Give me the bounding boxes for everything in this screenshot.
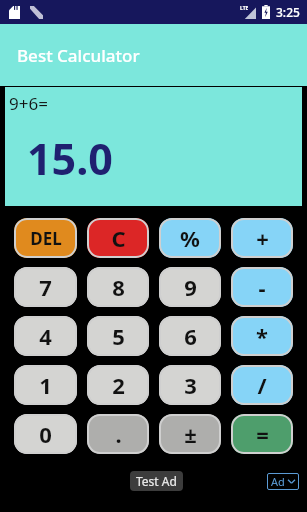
button[interactable]: 3 — [159, 365, 221, 405]
staticText: 3:25 — [276, 4, 300, 20]
staticText: Ad — [271, 474, 285, 489]
button[interactable]: 0 — [14, 414, 77, 454]
button[interactable]: 1 — [14, 365, 77, 405]
button[interactable]: / — [231, 365, 293, 405]
button[interactable]: % — [159, 218, 221, 258]
button[interactable]: Test Ad — [130, 471, 183, 491]
button[interactable]: . — [87, 414, 149, 454]
button[interactable]: 5 — [87, 316, 149, 356]
button[interactable]: 8 — [87, 267, 149, 307]
button[interactable]: * — [231, 316, 293, 356]
button[interactable]: 6 — [159, 316, 221, 356]
staticText: 3 — [184, 370, 197, 400]
button[interactable]: 2 — [87, 365, 149, 405]
staticText: Best Calculator — [17, 44, 140, 67]
staticText: ± — [184, 419, 197, 449]
staticText: DEL — [30, 227, 62, 250]
staticText: - — [258, 272, 266, 302]
staticText: 2 — [112, 370, 125, 400]
button[interactable]: + — [231, 218, 293, 258]
staticText: Test Ad — [136, 473, 177, 489]
staticText: / — [257, 370, 267, 400]
staticText: . — [115, 419, 122, 449]
staticText: 0 — [39, 419, 52, 449]
staticText: 8 — [112, 272, 125, 302]
staticText: 4 — [39, 321, 52, 351]
button[interactable]: - — [231, 267, 293, 307]
button[interactable]: 9 — [159, 267, 221, 307]
staticText: * — [256, 321, 268, 351]
button[interactable]: C — [87, 218, 149, 258]
staticText: = — [256, 419, 269, 449]
staticText: 7 — [39, 272, 52, 302]
staticText: C — [111, 223, 126, 253]
staticText: 1 — [39, 370, 52, 400]
button[interactable]: DEL — [14, 218, 77, 258]
button[interactable]: = — [231, 414, 293, 454]
staticText: + — [256, 223, 269, 253]
button[interactable]: ± — [159, 414, 221, 454]
button[interactable]: 7 — [14, 267, 77, 307]
staticText: 15.0 — [27, 129, 113, 188]
button[interactable]: Ad choices — [267, 473, 299, 490]
staticText: 6 — [184, 321, 197, 351]
staticText: 9 — [184, 272, 197, 302]
staticText: 5 — [112, 321, 125, 351]
staticText: 9+6= — [9, 92, 48, 115]
staticText: LTE — [240, 5, 249, 12]
button[interactable]: 4 — [14, 316, 77, 356]
staticText: % — [180, 223, 200, 253]
